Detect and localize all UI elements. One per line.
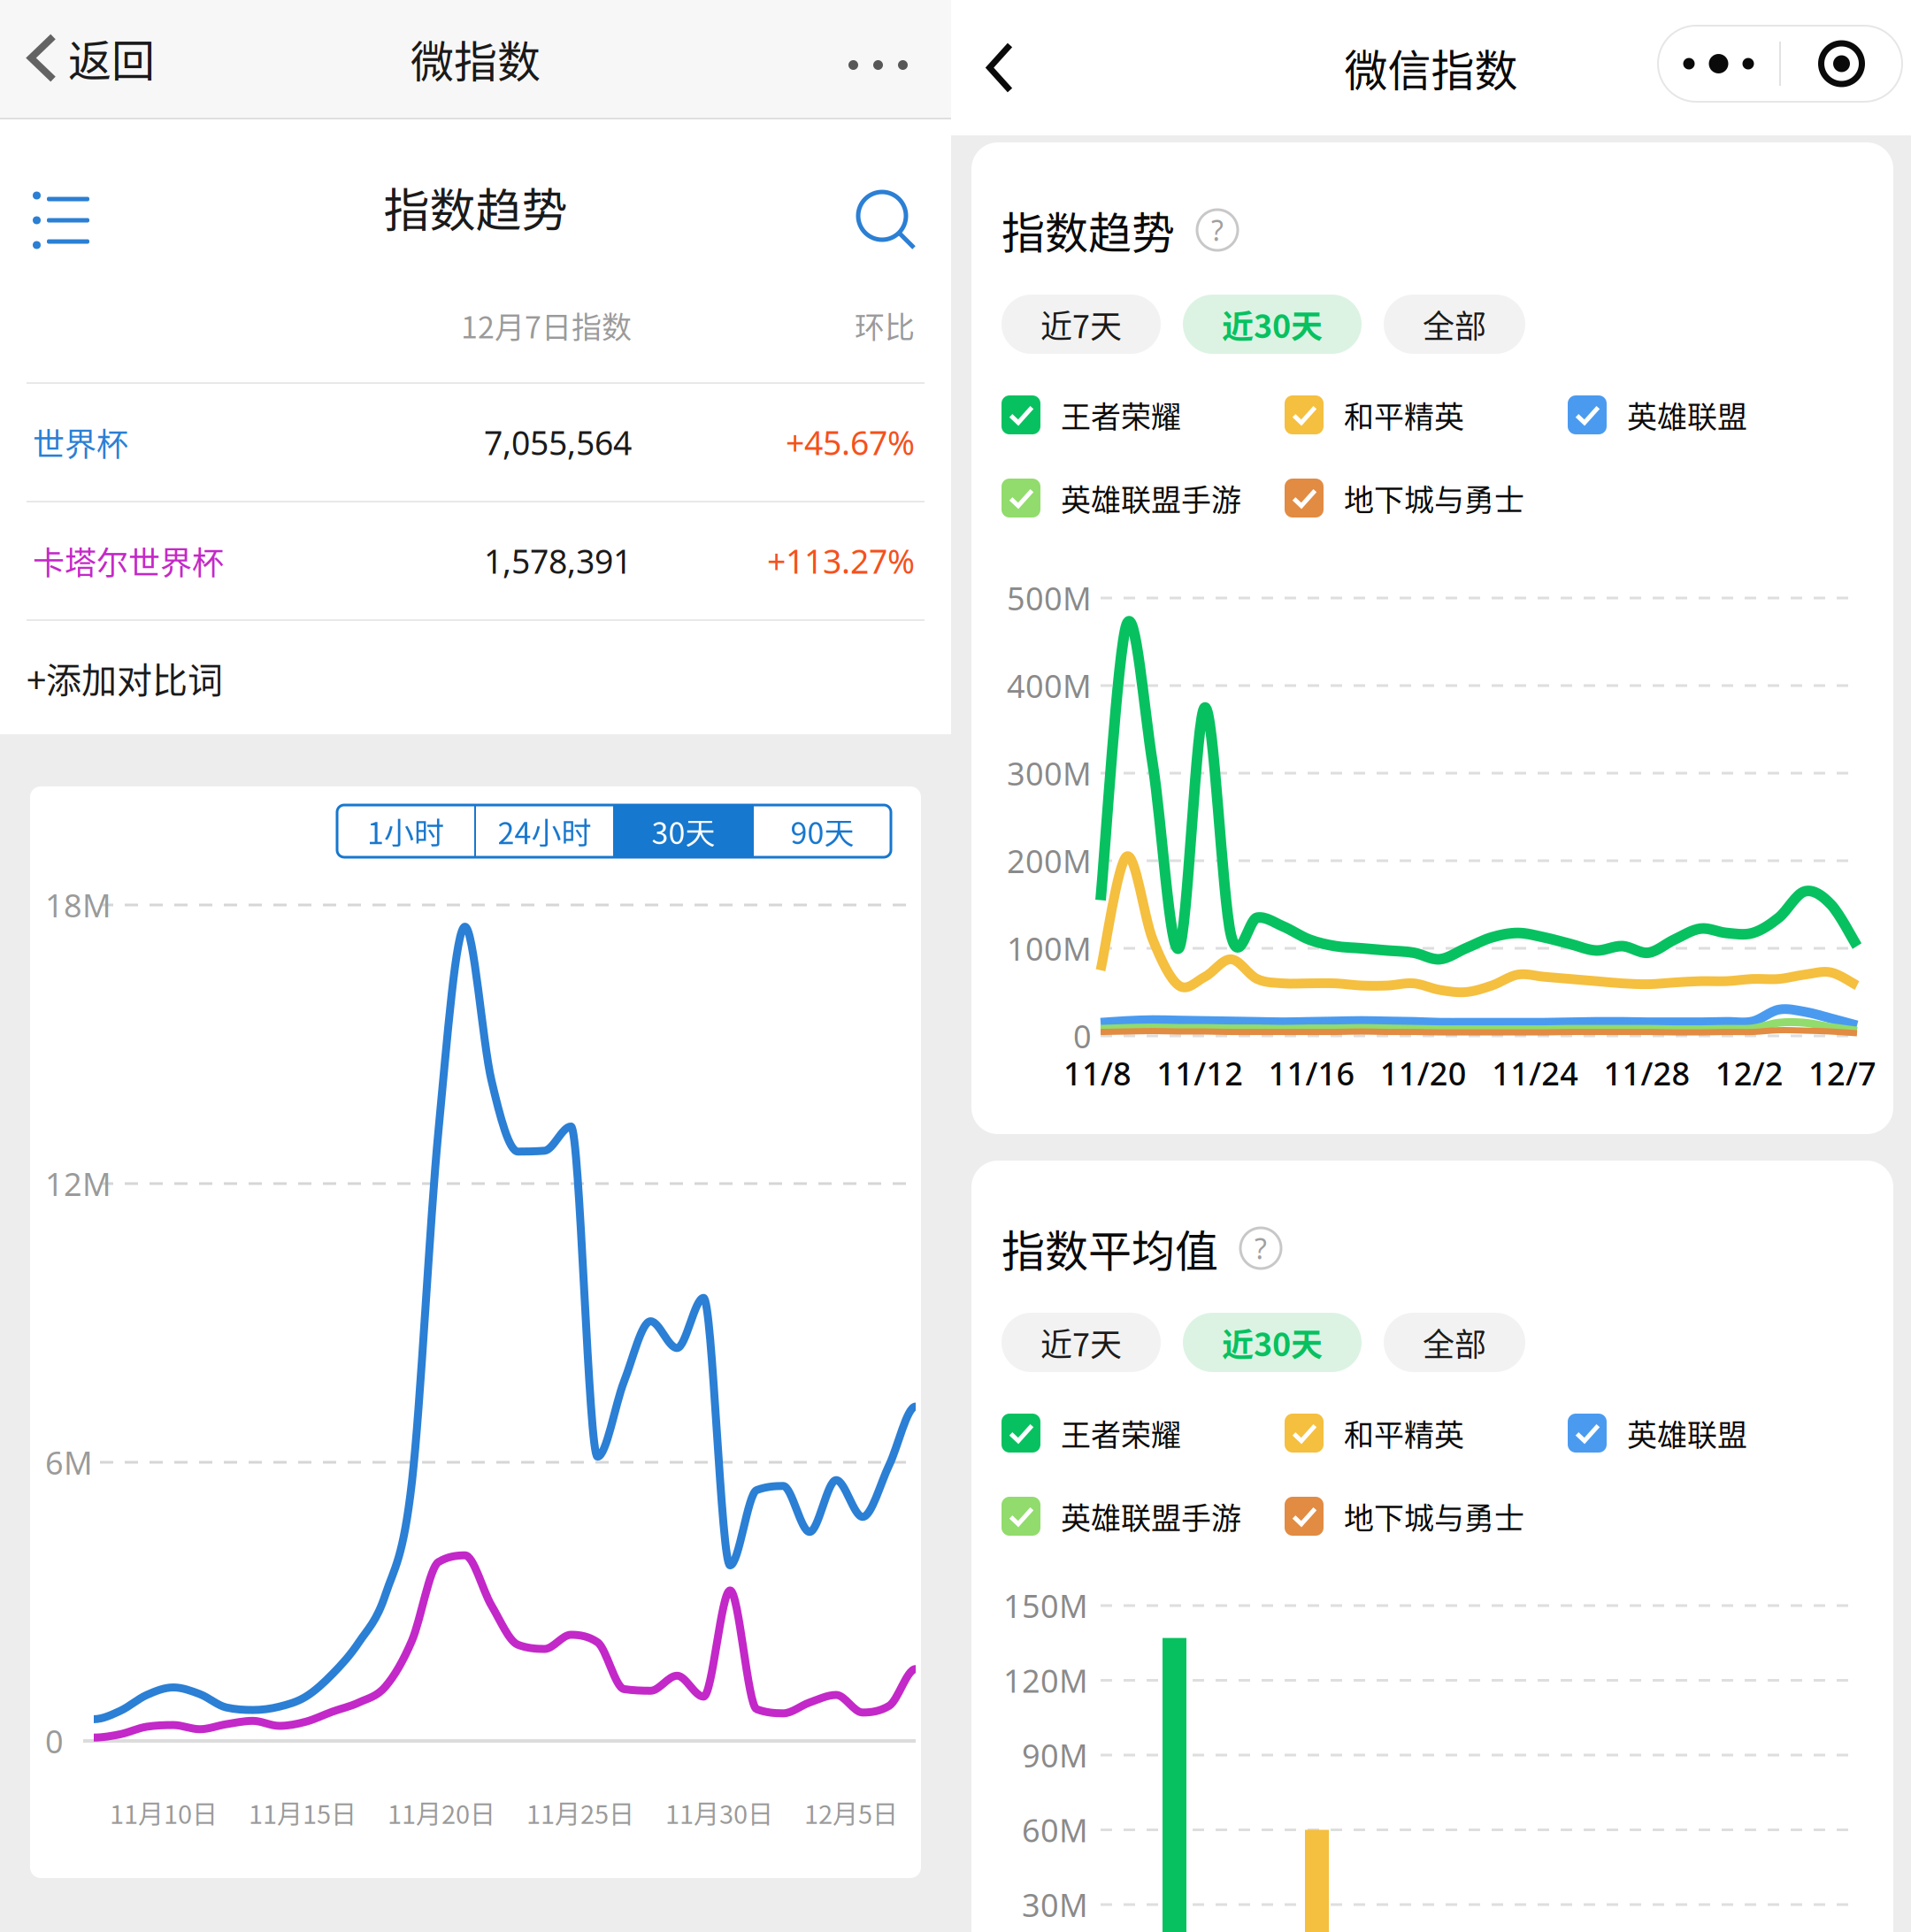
staticText: 90天	[790, 809, 854, 853]
staticText: 王者荣耀	[1061, 1411, 1181, 1455]
staticText: 卡塔尔世界杯	[33, 538, 224, 584]
staticText: 王者荣耀	[1061, 393, 1181, 437]
button[interactable]: 英雄联盟手游	[1002, 476, 1285, 520]
staticText: 环比	[855, 303, 915, 347]
staticText: 11月30日	[665, 1794, 773, 1831]
staticText: 近30天	[1222, 301, 1323, 347]
staticText: 11月15日	[249, 1794, 357, 1831]
button[interactable]: 和平精英	[1285, 393, 1568, 437]
button[interactable]: Search	[838, 172, 935, 269]
button[interactable]: 王者荣耀	[1002, 1411, 1285, 1455]
button[interactable]: Help	[1194, 207, 1240, 253]
staticText: +45.67%	[786, 420, 915, 464]
staticText: 11/16	[1268, 1052, 1355, 1094]
button[interactable]: 近7天	[1002, 1313, 1161, 1372]
staticText: 11/20	[1380, 1052, 1467, 1094]
button[interactable]: 全部	[1384, 1313, 1525, 1372]
staticText: 英雄联盟手游	[1061, 1494, 1241, 1538]
staticText: 微指数	[411, 27, 541, 90]
button[interactable]: 返回	[0, 9, 155, 109]
staticText: 英雄联盟	[1627, 1411, 1747, 1455]
staticText: 12月5日	[804, 1794, 898, 1831]
button[interactable]: 30天	[615, 805, 752, 857]
staticText: 12/7	[1808, 1052, 1876, 1094]
staticText: 11月20日	[388, 1794, 495, 1831]
staticText: +添加对比词	[27, 652, 223, 703]
button[interactable]: 近30天	[1183, 295, 1362, 354]
staticText: 11/28	[1603, 1052, 1690, 1094]
button[interactable]: Help	[1238, 1225, 1284, 1271]
staticText: 地下城与勇士	[1344, 1494, 1524, 1538]
staticText: 60M	[1022, 1809, 1088, 1851]
button[interactable]: 英雄联盟手游	[1002, 1494, 1285, 1538]
staticText: 世界杯	[33, 419, 128, 465]
staticText: ?	[1211, 211, 1224, 249]
staticText: 指数趋势	[1002, 199, 1175, 261]
button[interactable]: 王者荣耀	[1002, 393, 1285, 437]
staticText: 11/24	[1492, 1052, 1578, 1094]
button[interactable]: More	[1658, 26, 1779, 102]
staticText: 英雄联盟	[1627, 393, 1747, 437]
button[interactable]: 24小时	[476, 805, 613, 857]
button[interactable]: Back	[951, 21, 1013, 115]
staticText: 1小时	[367, 809, 444, 853]
staticText: 500M	[1007, 577, 1092, 619]
staticText: 6M	[45, 1441, 93, 1483]
button[interactable]: 地下城与勇士	[1285, 476, 1568, 520]
button[interactable]: 90天	[754, 805, 891, 857]
button[interactable]: Close	[1781, 26, 1902, 102]
staticText: 30M	[1022, 1883, 1088, 1926]
staticText: 12月7日指数	[461, 303, 632, 347]
button[interactable]: More	[848, 21, 951, 96]
staticText: 0	[1073, 1015, 1092, 1057]
staticText: 90M	[1022, 1734, 1088, 1776]
staticText: 指数趋势	[384, 174, 568, 240]
staticText: 120M	[1003, 1659, 1088, 1701]
staticText: 微信指数	[1344, 36, 1518, 99]
button[interactable]: 英雄联盟	[1568, 393, 1851, 437]
button[interactable]: 英雄联盟	[1568, 1411, 1851, 1455]
staticText: 0	[45, 1720, 64, 1762]
staticText: 英雄联盟手游	[1061, 476, 1241, 520]
button[interactable]: +添加对比词	[0, 621, 951, 734]
button[interactable]: 近30天	[1183, 1313, 1362, 1372]
staticText: +113.27%	[767, 539, 915, 583]
staticText: 24小时	[498, 809, 591, 853]
staticText: 1,578,391	[484, 539, 632, 583]
staticText: 近7天	[1040, 1319, 1122, 1365]
staticText: 11/8	[1063, 1052, 1132, 1094]
staticText: 全部	[1423, 1319, 1486, 1365]
staticText: 返回	[68, 27, 155, 89]
staticText: 11月10日	[110, 1794, 218, 1831]
button[interactable]: 近7天	[1002, 295, 1161, 354]
button[interactable]: 地下城与勇士	[1285, 1494, 1568, 1538]
staticText: 11/12	[1157, 1052, 1243, 1094]
staticText: 全部	[1423, 301, 1486, 347]
staticText: 和平精英	[1344, 1411, 1464, 1455]
button[interactable]: 和平精英	[1285, 1411, 1568, 1455]
button[interactable]: 世界杯	[0, 384, 951, 501]
staticText: 18M	[45, 884, 111, 926]
staticText: 7,055,564	[484, 420, 632, 464]
staticText: 100M	[1007, 927, 1092, 969]
staticText: 400M	[1007, 664, 1092, 707]
button[interactable]: Keyword list	[12, 172, 110, 269]
staticText: 12M	[45, 1162, 111, 1205]
staticText: 30天	[652, 809, 715, 853]
button[interactable]: 1小时	[337, 805, 474, 857]
staticText: 地下城与勇士	[1344, 476, 1524, 520]
staticText: 指数平均值	[1002, 1217, 1218, 1280]
staticText: 近30天	[1222, 1319, 1323, 1365]
staticText: 11月25日	[526, 1794, 634, 1831]
staticText: 和平精英	[1344, 393, 1464, 437]
staticText: 150M	[1003, 1584, 1088, 1627]
staticText: 200M	[1007, 840, 1092, 882]
button[interactable]: 卡塔尔世界杯	[0, 502, 951, 619]
staticText: 300M	[1007, 752, 1092, 794]
staticText: ?	[1255, 1229, 1267, 1267]
staticText: 12/2	[1715, 1052, 1783, 1094]
button[interactable]: 全部	[1384, 295, 1525, 354]
staticText: 近7天	[1040, 301, 1122, 347]
